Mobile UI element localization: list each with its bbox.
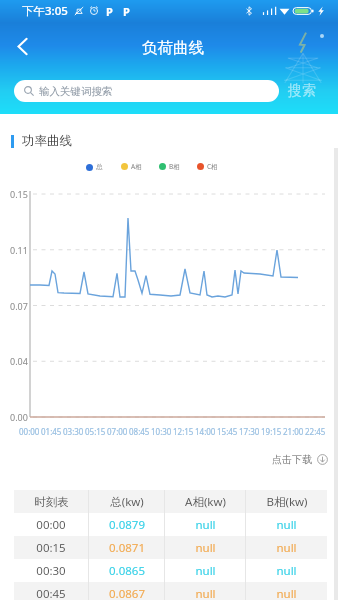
staticText: 03:30 [63,426,84,437]
staticText: 10:30 [151,426,172,437]
staticText: 07:00 [107,426,128,437]
button[interactable]: 00:15 [14,536,327,559]
staticText: 08:45 [129,426,150,437]
staticText: 00:15 [36,540,66,556]
staticText: 00:45 [36,586,66,600]
staticText: 下午3:05 [22,3,68,19]
staticText: 00:00 [36,517,66,533]
staticText: 05:15 [85,426,106,437]
staticText: null [195,586,216,600]
staticText: null [276,563,297,579]
staticText: 0.0865 [109,563,145,579]
staticText: null [195,517,216,533]
staticText: null [195,540,216,556]
staticText: A相(kw) [185,494,226,510]
staticText: P [123,4,130,19]
button[interactable]: 00:30 [14,559,327,582]
staticText: 0.07 [10,300,28,312]
staticText: 00:00 [19,426,40,437]
button[interactable]: 点击下载 [272,450,328,468]
staticText: 17:30 [239,426,260,437]
staticText: 0.04 [10,355,28,367]
staticText: B相(kw) [266,494,308,510]
staticText: 时刻表 [34,495,69,509]
staticText: 00:30 [36,563,66,579]
staticText: 总(kw) [110,494,144,510]
button[interactable]: Back [0,26,44,66]
staticText: null [276,586,297,600]
staticText: 0.15 [10,188,28,200]
button[interactable]: 00:00 [14,513,327,536]
staticText: 14:00 [195,426,216,437]
button[interactable]: 搜索 [286,80,318,102]
staticText: 功率曲线 [22,133,72,149]
staticText: 总 [96,163,103,171]
staticText: null [195,563,216,579]
staticText: 21:00 [283,426,304,437]
staticText: null [276,540,297,556]
staticText: C相 [207,162,218,171]
staticText: 12:15 [173,426,194,437]
staticText: A相 [131,162,142,171]
staticText: 22:45 [305,426,326,437]
staticText: 0.0867 [109,586,145,600]
staticText: 点击下载 [272,453,312,466]
button[interactable]: 00:45 [14,582,327,600]
staticText: null [276,517,297,533]
staticText: 输入关键词搜索 [39,85,113,98]
staticText: 负荷曲线 [142,38,204,58]
staticText: 19:15 [261,426,282,437]
staticText: 01:45 [41,426,62,437]
staticText: P [106,4,113,19]
staticText: 0.0879 [109,517,145,533]
staticText: 15:45 [217,426,238,437]
button[interactable]: 输入关键词搜索 [14,80,279,102]
staticText: 0.00 [10,411,28,423]
staticText: 0.11 [10,244,28,256]
staticText: B相 [169,162,180,171]
button[interactable]: 时刻表 [14,490,327,513]
staticText: 搜索 [288,82,316,100]
staticText: 0.0871 [109,540,145,556]
